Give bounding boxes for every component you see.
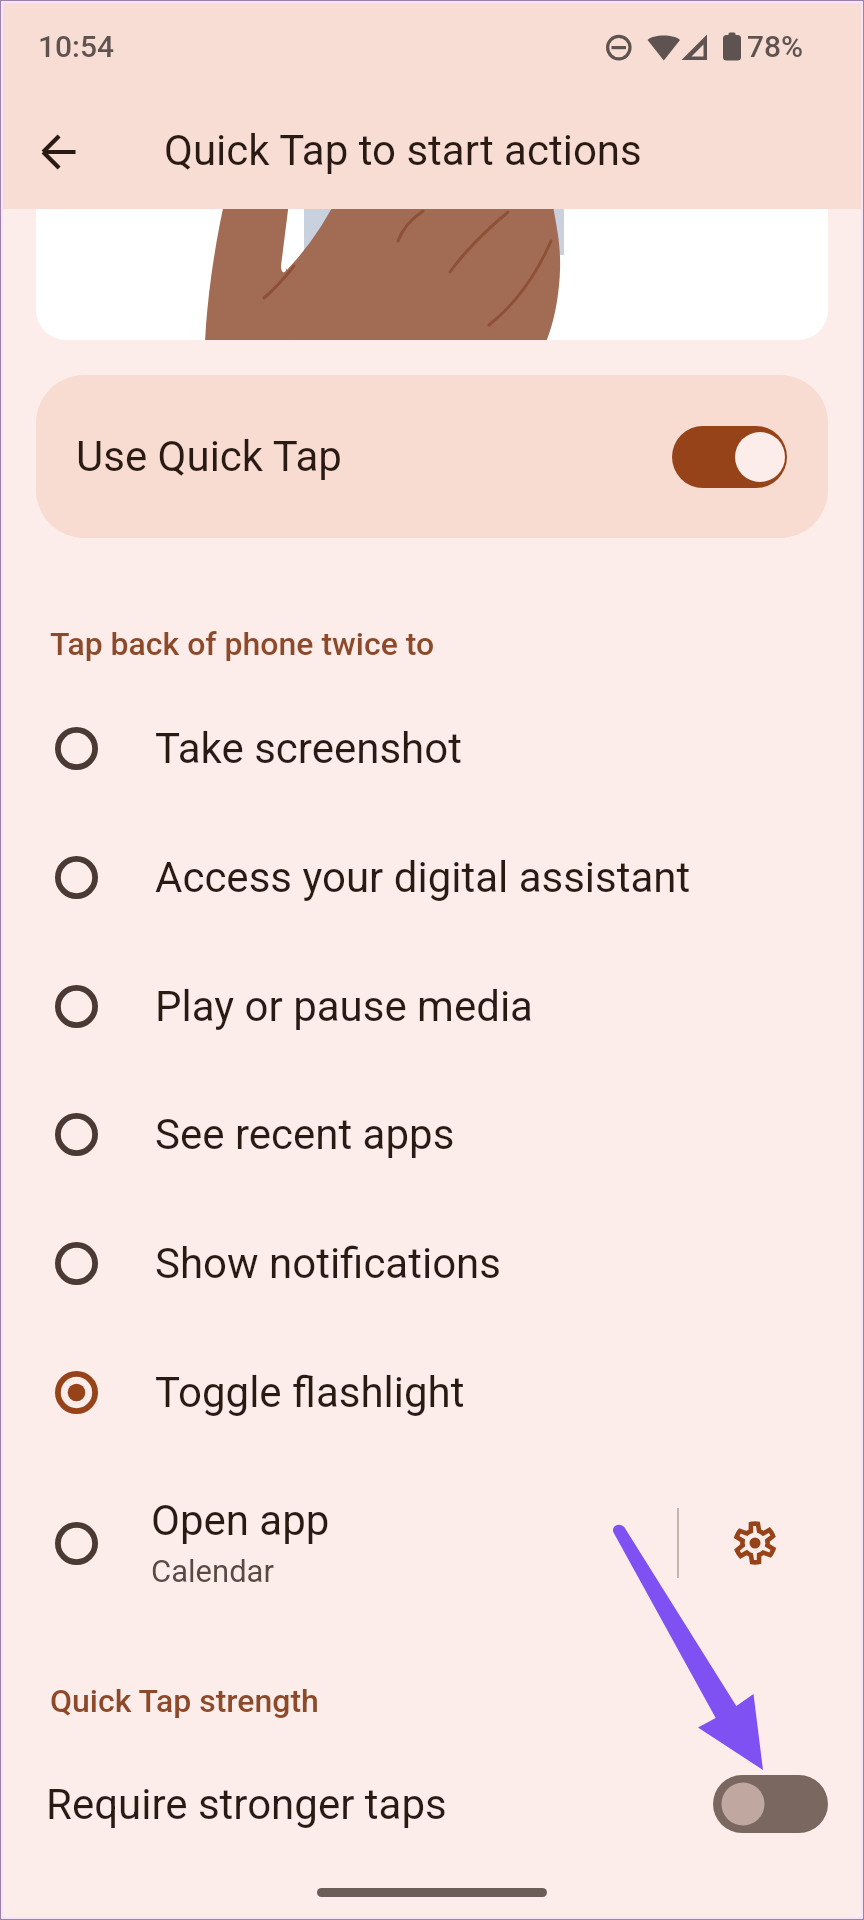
button[interactable]: Show notifications (0, 1199, 864, 1328)
staticText: Quick Tap to start actions (164, 126, 642, 175)
staticText: 78% (747, 29, 804, 64)
button[interactable]: Access your digital assistant (0, 813, 864, 942)
button[interactable]: Take screenshot (0, 684, 864, 813)
staticText: Open app (151, 1496, 330, 1545)
button[interactable]: Use Quick Tap (36, 375, 828, 538)
staticText: Access your digital assistant (155, 853, 691, 902)
button[interactable]: See recent apps (0, 1070, 864, 1199)
staticText: Show notifications (155, 1239, 501, 1288)
staticText: Quick Tap strength (50, 1682, 319, 1720)
staticText: Take screenshot (155, 724, 462, 773)
staticText: Tap back of phone twice to (50, 625, 435, 663)
button[interactable]: Open app (0, 1473, 660, 1613)
button[interactable]: Play or pause media (0, 942, 864, 1071)
staticText: 10:54 (38, 29, 115, 64)
staticText: See recent apps (155, 1110, 455, 1159)
button[interactable]: Toggle flashlight (0, 1328, 864, 1457)
button[interactable]: Open app settings (707, 1495, 803, 1591)
button[interactable]: Require stronger taps (0, 1749, 864, 1859)
staticText: Use Quick Tap (76, 432, 342, 481)
staticText: Play or pause media (155, 982, 533, 1031)
button[interactable]: Back (28, 121, 90, 183)
staticText: Toggle flashlight (155, 1368, 465, 1417)
staticText: Require stronger taps (46, 1780, 447, 1829)
staticText: Calendar (151, 1553, 274, 1589)
